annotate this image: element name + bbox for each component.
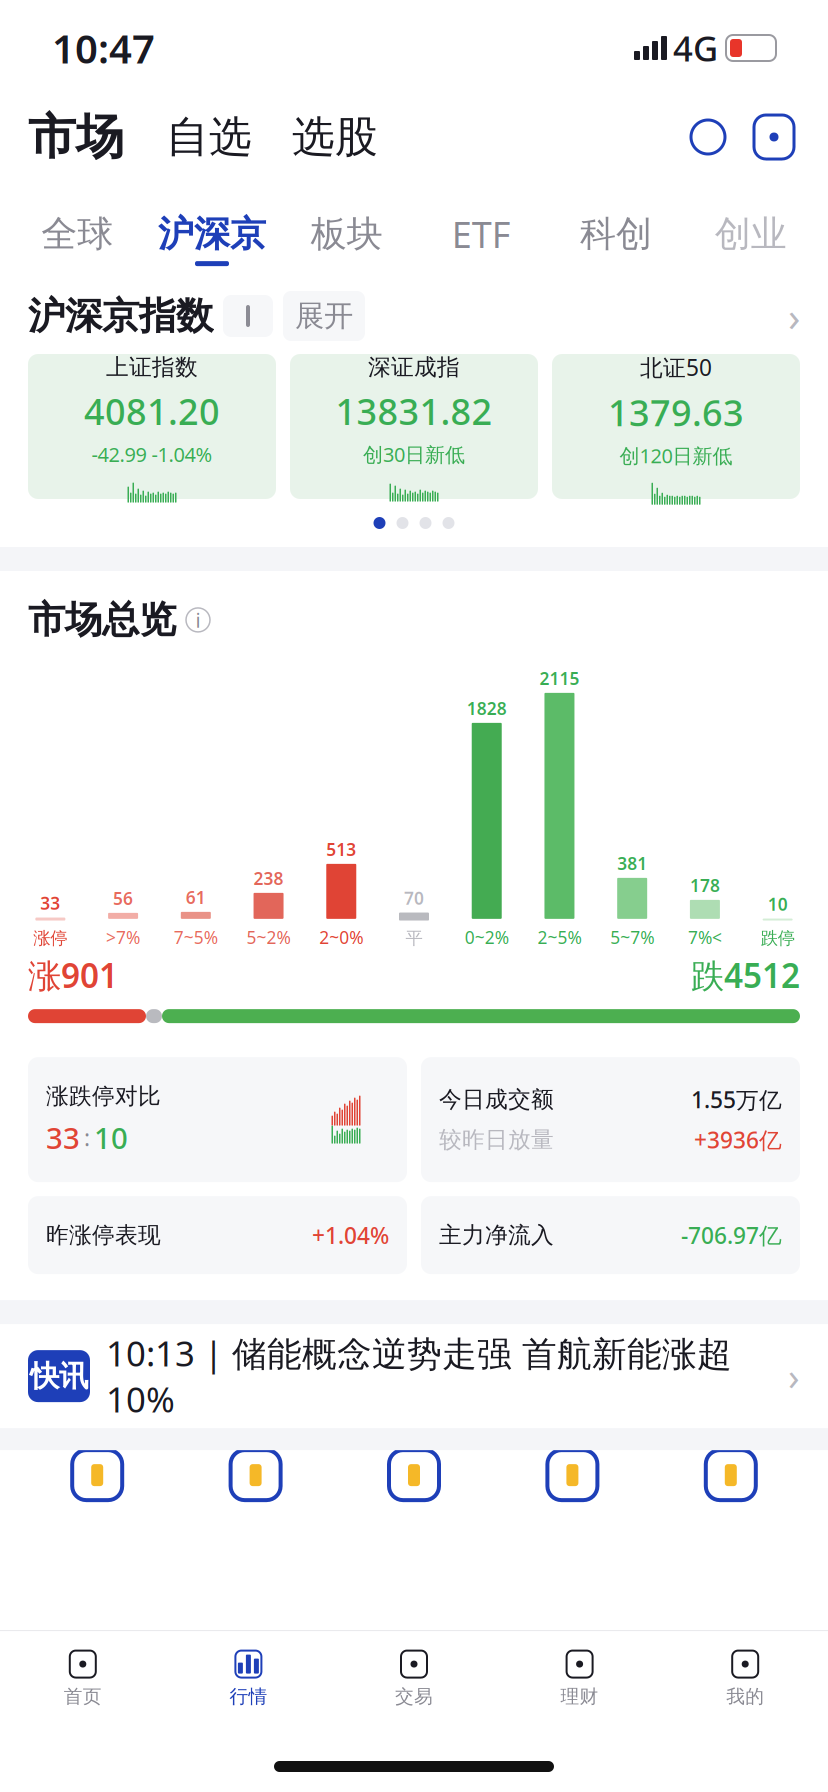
staticText: ETF — [452, 210, 511, 258]
staticText: 沪深京指数 — [28, 293, 213, 339]
staticText: 61 — [186, 886, 206, 909]
button[interactable]: 首页 — [0, 1643, 166, 1714]
staticText: 33 — [46, 1118, 80, 1157]
staticText: 交易 — [395, 1685, 433, 1708]
staticText: 0~2% — [465, 926, 509, 949]
staticText: 10 — [768, 892, 788, 915]
button[interactable]: 创业 — [683, 212, 818, 266]
staticText: 4081.20 — [84, 387, 220, 435]
staticText: 市场 — [28, 107, 124, 166]
button[interactable]: 今日成交额 — [421, 1057, 800, 1182]
button[interactable]: 涨跌停对比 — [28, 1057, 407, 1182]
staticText: 板块 — [311, 212, 383, 256]
button[interactable]: 说明 — [186, 607, 210, 633]
staticText: 10:47 — [52, 21, 155, 74]
button[interactable]: 市场 — [28, 107, 124, 166]
staticText: 238 — [253, 867, 283, 890]
staticText: i — [195, 607, 200, 633]
staticText: 1828 — [467, 697, 507, 720]
staticText: 创30日新低 — [363, 441, 465, 468]
staticText: 较昨日放量 — [439, 1126, 554, 1154]
staticText: 4G — [673, 25, 718, 71]
staticText: 1379.63 — [608, 388, 744, 436]
staticText: 上证指数 — [106, 353, 198, 381]
button[interactable]: 自选 — [124, 111, 252, 163]
button[interactable]: 我的 — [662, 1643, 828, 1714]
staticText: 178 — [690, 874, 720, 897]
button[interactable]: 快捷入口 — [176, 1450, 335, 1500]
button[interactable]: 扫描 — [748, 111, 800, 163]
staticText: -706.97亿 — [681, 1220, 782, 1250]
button[interactable]: 快讯 — [0, 1324, 828, 1428]
staticText: 创业 — [715, 212, 787, 256]
button[interactable]: 选股 — [252, 111, 378, 163]
staticText: 513 — [326, 838, 356, 861]
staticText: 平 — [405, 928, 422, 949]
staticText: 7%< — [688, 926, 722, 949]
staticText: 市场总览 — [28, 597, 176, 643]
staticText: 5~7% — [610, 926, 654, 949]
button[interactable]: 主力净流入 — [421, 1196, 800, 1274]
button[interactable]: 搜索 — [682, 111, 734, 163]
staticText: 创120日新低 — [619, 442, 732, 469]
button[interactable]: 快捷入口 — [335, 1450, 493, 1500]
button[interactable]: 北证50 — [552, 354, 800, 499]
staticText: 展开 — [295, 298, 353, 334]
button[interactable]: 交易 — [331, 1643, 497, 1714]
staticText: 33 — [40, 891, 60, 914]
staticText: › — [788, 1351, 800, 1401]
staticText: : — [84, 1122, 90, 1153]
staticText: 10:13 | 储能概念逆势走强 首航新能涨超10% — [106, 1330, 732, 1422]
staticText: 昨涨停表现 — [46, 1221, 161, 1249]
staticText: 选股 — [292, 111, 378, 163]
staticText: 涨跌停对比 — [46, 1082, 161, 1110]
staticText: › — [788, 289, 800, 342]
staticText: 沪深京 — [158, 212, 266, 256]
button[interactable]: 深证成指 — [290, 354, 538, 499]
button[interactable]: 理财 — [497, 1643, 662, 1714]
staticText: 涨901 — [28, 953, 118, 997]
staticText: +3936亿 — [694, 1125, 782, 1155]
staticText: 381 — [617, 852, 647, 875]
staticText: 10 — [94, 1118, 128, 1157]
staticText: -42.99 -1.04% — [91, 441, 212, 468]
button[interactable]: 上证指数 — [28, 354, 276, 499]
staticText: 我的 — [726, 1685, 764, 1708]
staticText: 科创 — [580, 212, 652, 256]
staticText: 全球 — [41, 212, 113, 256]
staticText: 5~2% — [246, 926, 290, 949]
button[interactable]: 快捷入口 — [18, 1450, 176, 1500]
staticText: 跌4512 — [691, 953, 800, 997]
button[interactable]: 快捷入口 — [652, 1450, 810, 1500]
staticText: 自选 — [166, 111, 252, 163]
button[interactable]: 昨涨停表现 — [28, 1196, 407, 1274]
staticText: 13831.82 — [335, 387, 492, 435]
staticText: 56 — [113, 887, 133, 910]
staticText: +1.04% — [312, 1220, 389, 1250]
button[interactable]: 全球 — [10, 212, 145, 266]
staticText: 7~5% — [174, 926, 218, 949]
staticText: >7% — [106, 926, 140, 949]
button[interactable]: 沪深京 — [145, 212, 279, 266]
staticText: 主力净流入 — [439, 1221, 554, 1249]
button[interactable]: 快捷入口 — [493, 1450, 652, 1500]
staticText: 行情 — [229, 1685, 267, 1708]
button[interactable]: 板块 — [279, 212, 414, 266]
staticText: 首页 — [64, 1685, 102, 1708]
staticText: 理财 — [561, 1685, 599, 1708]
staticText: 2~0% — [319, 926, 363, 949]
staticText: 2115 — [539, 667, 579, 690]
staticText: 跌停 — [761, 928, 795, 949]
staticText: 2~5% — [537, 926, 581, 949]
button[interactable]: 科创 — [549, 212, 683, 266]
button[interactable]: ETF — [414, 210, 549, 268]
button[interactable]: 沪深京指数 — [0, 278, 828, 354]
staticText: 涨停 — [33, 928, 67, 949]
staticText: 今日成交额 — [439, 1086, 554, 1113]
staticText: 70 — [404, 886, 424, 909]
staticText: 北证50 — [640, 352, 712, 382]
staticText: 1.55万亿 — [691, 1084, 782, 1115]
button[interactable]: 行情 — [166, 1643, 331, 1714]
staticText: 快讯 — [30, 1358, 88, 1394]
staticText: 深证成指 — [368, 353, 460, 381]
